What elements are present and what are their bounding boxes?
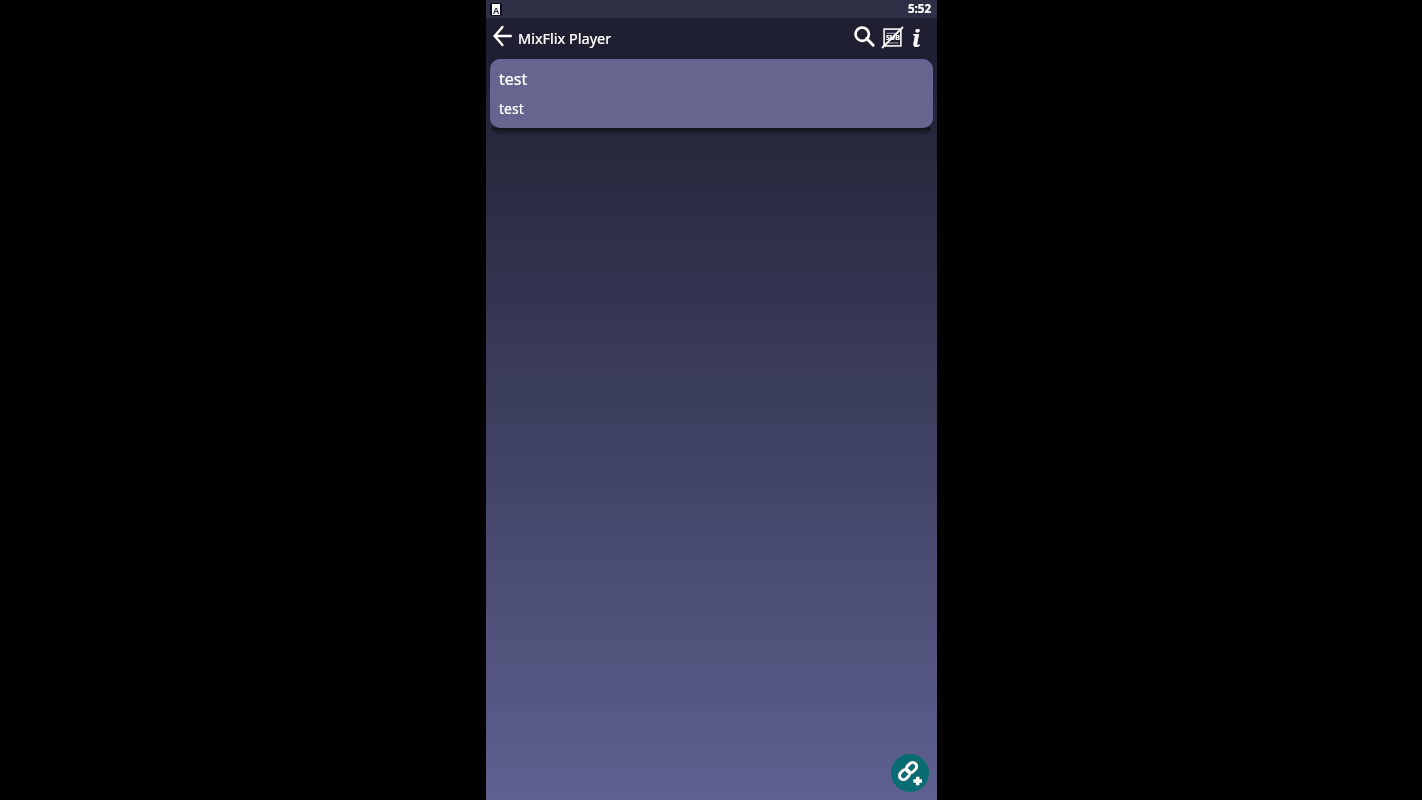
- button[interactable]: Add link: [891, 754, 929, 792]
- button[interactable]: test: [490, 59, 933, 128]
- staticText: test: [499, 99, 524, 118]
- staticText: A: [493, 4, 500, 15]
- staticText: SUB: [886, 33, 900, 43]
- button[interactable]: Back: [489, 24, 517, 52]
- staticText: test: [499, 68, 528, 90]
- staticText: i: [912, 22, 921, 53]
- button[interactable]: Search: [843, 21, 875, 55]
- button[interactable]: Subtitles off: [875, 21, 905, 55]
- button[interactable]: Info: [905, 21, 931, 55]
- staticText: 5:52: [908, 1, 931, 17]
- staticText: MixFlix Player: [518, 28, 612, 48]
